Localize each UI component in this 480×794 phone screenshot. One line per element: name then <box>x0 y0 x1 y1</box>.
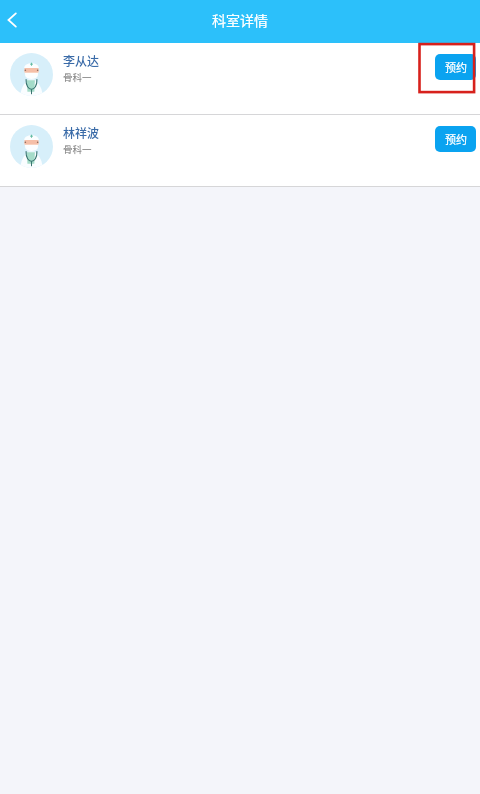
staticText: 李从达 <box>63 52 100 69</box>
staticText: 预约 <box>445 131 467 147</box>
staticText: 骨科一 <box>63 70 92 84</box>
button[interactable]: Back <box>0 0 34 43</box>
button[interactable]: 预约 <box>435 54 476 80</box>
button[interactable]: 预约 <box>435 126 476 152</box>
button[interactable]: 李从达 <box>0 43 480 114</box>
staticText: 科室详情 <box>212 10 268 30</box>
staticText: 骨科一 <box>63 142 92 156</box>
staticText: 预约 <box>445 59 467 75</box>
staticText: 林祥波 <box>63 124 100 141</box>
button[interactable]: 林祥波 <box>0 115 480 186</box>
